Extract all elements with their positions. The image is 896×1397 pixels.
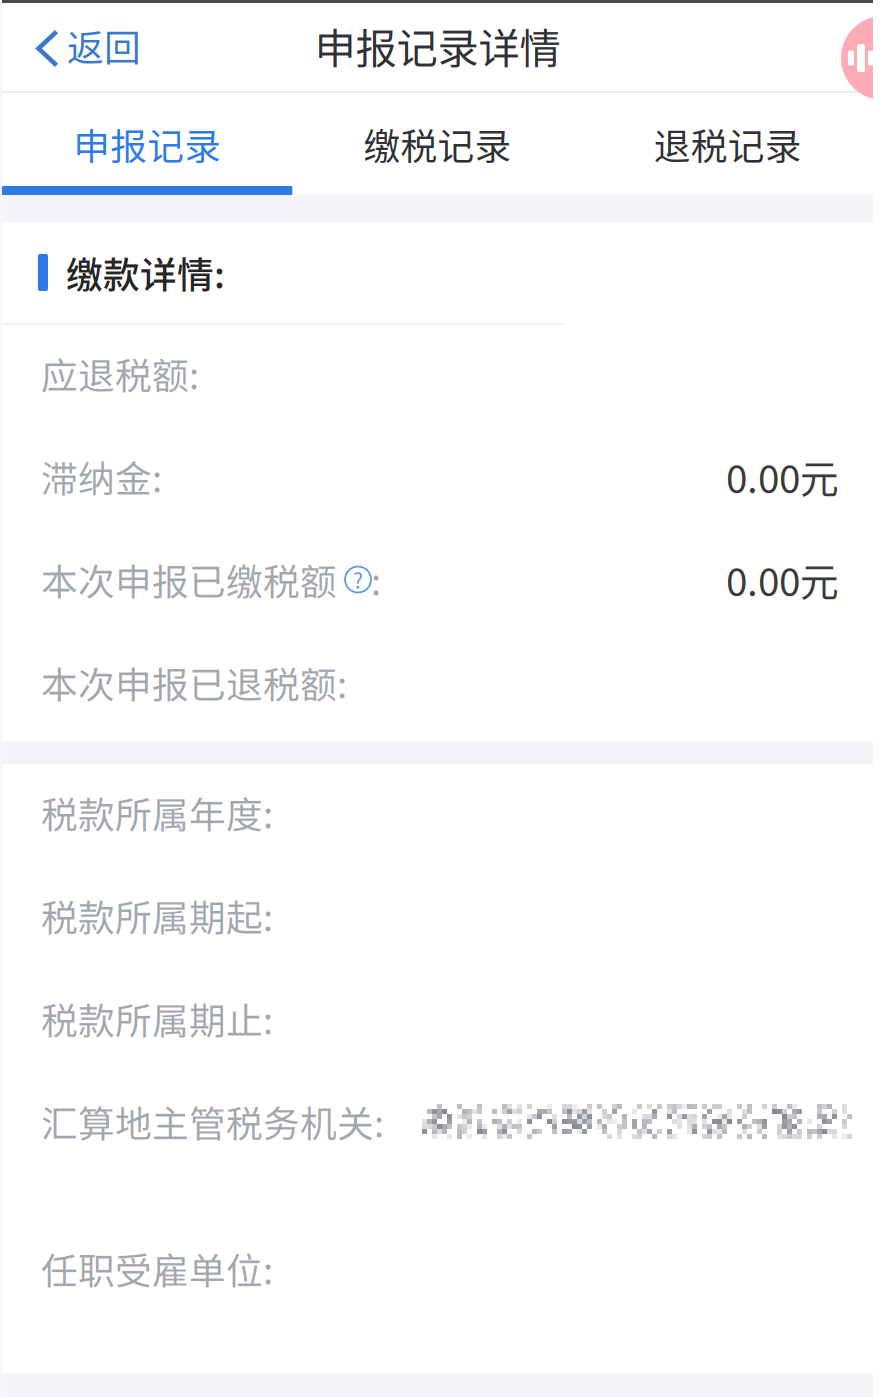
staticText: 0.00元 <box>726 448 839 504</box>
staticText: 本次申报已退税额: <box>41 656 347 709</box>
staticText: 返回 <box>67 19 141 72</box>
staticText: 本次申报已缴税额 <box>41 553 345 606</box>
staticText: 汇算地主管税务机关: <box>41 1095 384 1148</box>
staticText: 税款所属年度: <box>41 786 273 839</box>
button[interactable]: 退税记录 <box>583 97 873 190</box>
staticText: 任职受雇单位: <box>41 1242 273 1295</box>
staticText: 应退税额: <box>41 347 199 400</box>
staticText: 申报记录详情 <box>314 16 560 75</box>
staticText: 滞纳金: <box>41 450 162 503</box>
button[interactable]: 智能客服 <box>841 16 896 100</box>
staticText: 申报记录 <box>73 117 221 171</box>
staticText: 缴税记录 <box>363 117 511 171</box>
button[interactable]: 申报记录 <box>2 97 292 190</box>
staticText: 0.00元 <box>726 551 839 607</box>
staticText: ? <box>353 564 363 595</box>
staticText: 税款所属期起: <box>41 889 273 942</box>
staticText: : <box>371 553 381 606</box>
button[interactable]: 缴税记录 <box>292 97 583 190</box>
staticText: 缴款详情: <box>66 246 225 299</box>
button[interactable]: 返回 <box>2 0 202 91</box>
staticText: 税款所属期止: <box>41 992 273 1045</box>
staticText: 退税记录 <box>654 117 802 171</box>
